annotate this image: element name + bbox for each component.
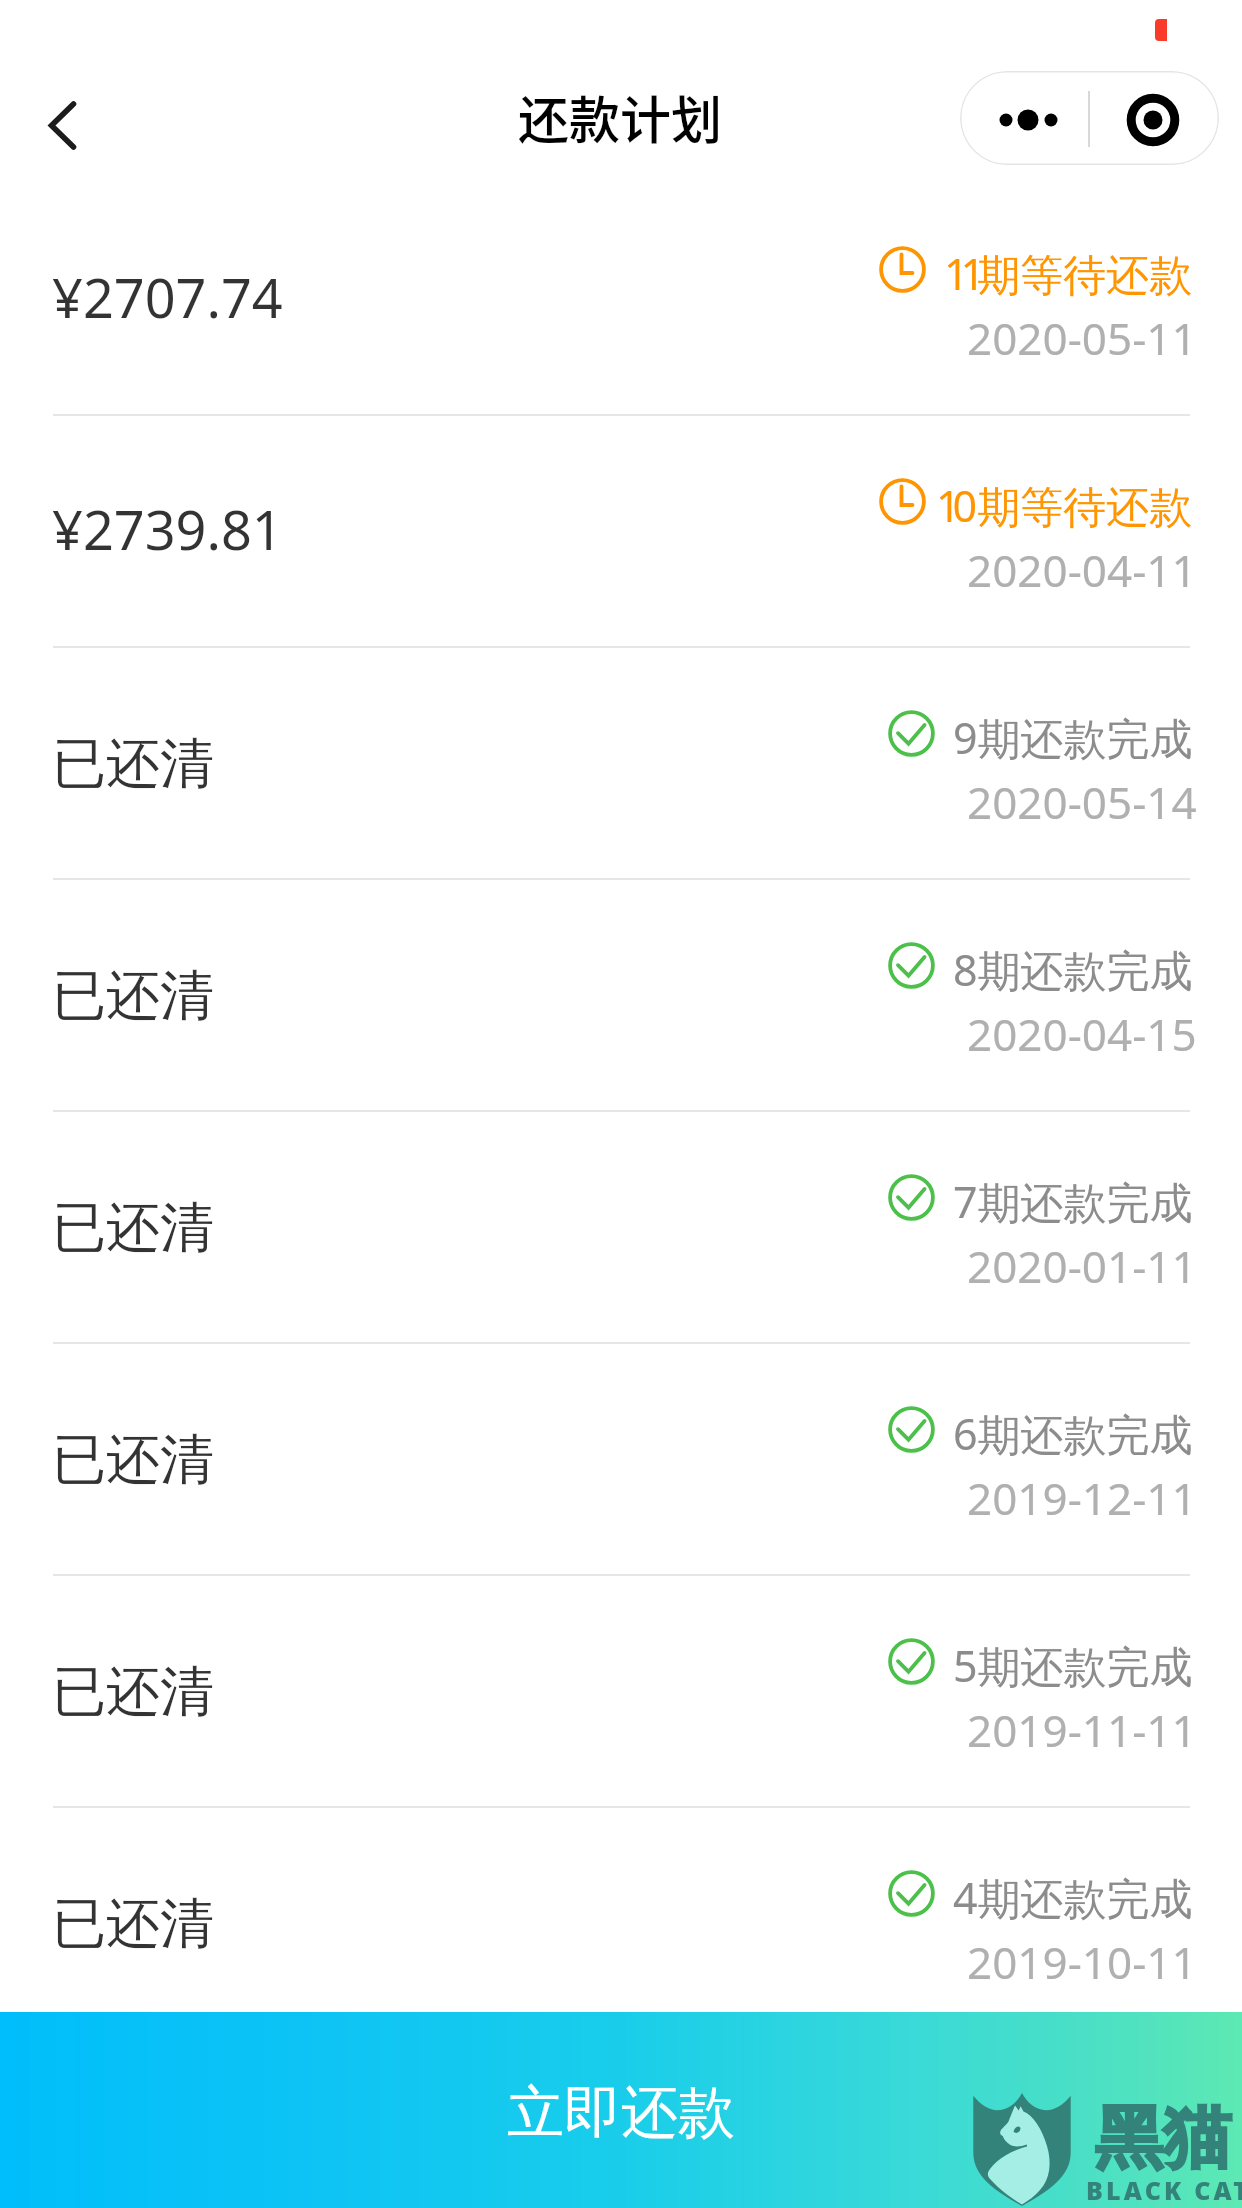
staticText: 2019-12-11: [967, 1468, 1197, 1528]
button[interactable]: Back: [10, 76, 100, 176]
staticText: 2019-10-11: [967, 1932, 1197, 1992]
staticText: 2020-05-14: [967, 772, 1197, 832]
staticText: 已还清: [52, 1658, 214, 1726]
staticText: 9期还款完成: [953, 708, 1193, 767]
staticText: ¥2707.74: [52, 260, 283, 334]
staticText: 黑猫: [1095, 2096, 1231, 2182]
button[interactable]: Close mini program: [1089, 71, 1219, 165]
button[interactable]: More options: [960, 71, 1089, 165]
staticText: 11期等待还款: [944, 244, 1193, 303]
staticText: 还款计划: [518, 80, 723, 154]
staticText: 已还清: [52, 962, 214, 1030]
staticText: 7期还款完成: [953, 1172, 1193, 1231]
staticText: 8期还款完成: [953, 940, 1193, 999]
staticText: 10期等待还款: [936, 476, 1193, 535]
staticText: 4期还款完成: [953, 1868, 1193, 1927]
staticText: ¥2739.81: [52, 492, 283, 566]
button[interactable]: ¥2739.81: [0, 416, 1242, 648]
button[interactable]: 立即还款: [0, 2012, 1242, 2208]
staticText: 6期还款完成: [953, 1404, 1193, 1463]
button[interactable]: 已还清: [0, 1112, 1242, 1344]
staticText: 已还清: [52, 730, 214, 798]
button[interactable]: 已还清: [0, 1576, 1242, 1808]
staticText: 已还清: [52, 1194, 214, 1262]
staticText: 已还清: [52, 1426, 214, 1494]
button[interactable]: ¥2707.74: [0, 184, 1242, 416]
staticText: 5期还款完成: [953, 1636, 1193, 1695]
staticText: 2020-04-11: [967, 540, 1197, 600]
staticText: 2020-05-11: [967, 308, 1197, 368]
button[interactable]: 已还清: [0, 648, 1242, 880]
staticText: 已还清: [52, 1890, 214, 1958]
staticText: 立即还款: [507, 2077, 735, 2149]
staticText: 2020-01-11: [967, 1236, 1197, 1296]
staticText: 2020-04-15: [967, 1004, 1197, 1064]
button[interactable]: 已还清: [0, 880, 1242, 1112]
button[interactable]: 已还清: [0, 1808, 1242, 2040]
staticText: 2019-11-11: [967, 1700, 1197, 1760]
button[interactable]: 已还清: [0, 1344, 1242, 1576]
staticText: BLACK CAT: [1086, 2173, 1242, 2207]
